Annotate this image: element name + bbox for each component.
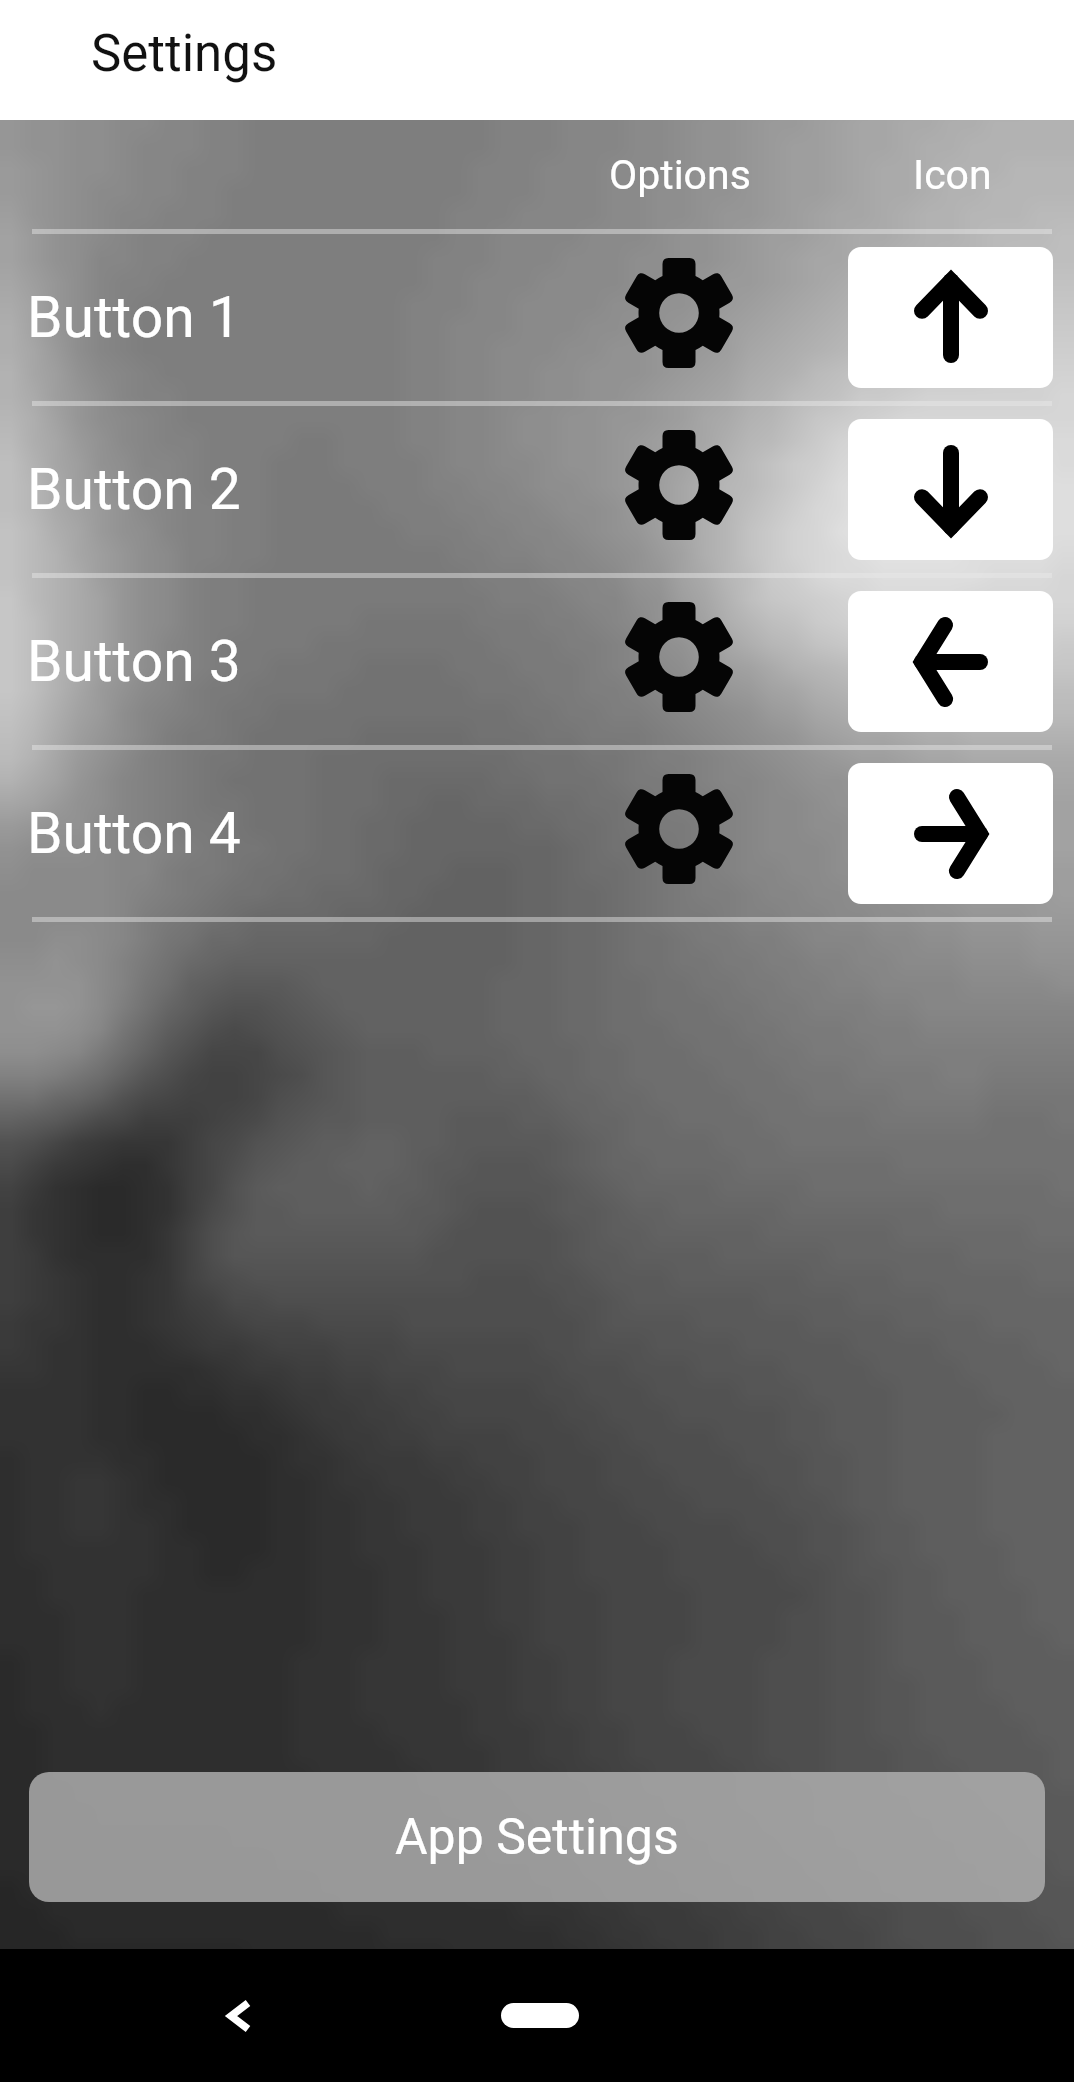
staticText: Button 2 [27, 456, 241, 523]
button[interactable]: Home [482, 1986, 592, 2046]
button[interactable]: Move down [848, 419, 1053, 560]
button[interactable]: Move right [848, 763, 1053, 904]
button[interactable]: Button 3 [0, 578, 1074, 745]
button[interactable]: Move up [848, 247, 1053, 388]
staticText: Button 1 [27, 284, 241, 351]
button[interactable]: Button 4 [0, 750, 1074, 917]
staticText: Options [609, 151, 751, 199]
button[interactable]: Button 1 options [624, 258, 734, 368]
button[interactable]: App Settings [29, 1772, 1045, 1902]
staticText: Button 4 [27, 800, 241, 867]
button[interactable]: Button 3 options [624, 602, 734, 712]
button[interactable]: Back [199, 1976, 279, 2056]
button[interactable]: Button 2 options [624, 430, 734, 540]
staticText: Icon [913, 151, 992, 199]
button[interactable]: Button 1 [0, 234, 1074, 401]
button[interactable]: Button 2 [0, 406, 1074, 573]
button[interactable]: Button 4 options [624, 774, 734, 884]
staticText: App Settings [395, 1808, 679, 1867]
button[interactable]: Move left [848, 591, 1053, 732]
staticText: Settings [91, 24, 278, 84]
staticText: Button 3 [27, 628, 241, 695]
